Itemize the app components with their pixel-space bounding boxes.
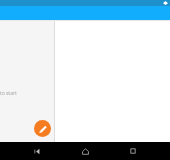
button[interactable]: Recent apps [122, 142, 144, 160]
staticText: Tap the pencil to start one. [0, 90, 20, 97]
button[interactable]: Compose new message [34, 120, 51, 137]
button[interactable]: Back [26, 142, 48, 160]
button[interactable]: Home [74, 142, 96, 160]
